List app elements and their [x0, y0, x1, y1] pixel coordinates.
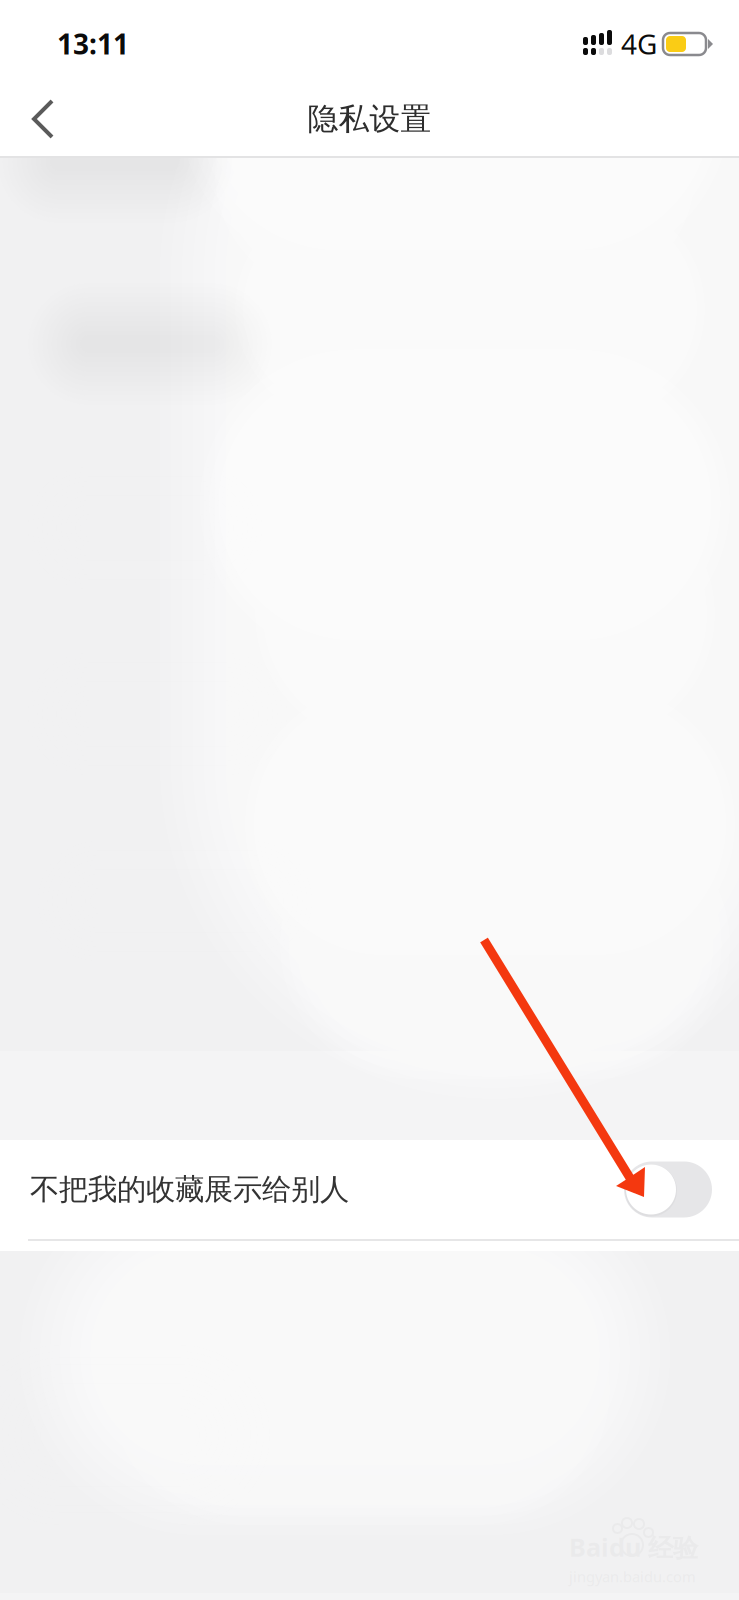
button[interactable]: Back — [0, 84, 90, 154]
staticText: 4G — [621, 25, 657, 62]
staticText: 不把我的收藏展示给别人 — [30, 1171, 349, 1207]
button[interactable]: 不把我的收藏展示给别人 — [0, 1140, 739, 1251]
staticText: 13:11 — [57, 25, 129, 62]
staticText: 隐私设置 — [307, 100, 431, 138]
